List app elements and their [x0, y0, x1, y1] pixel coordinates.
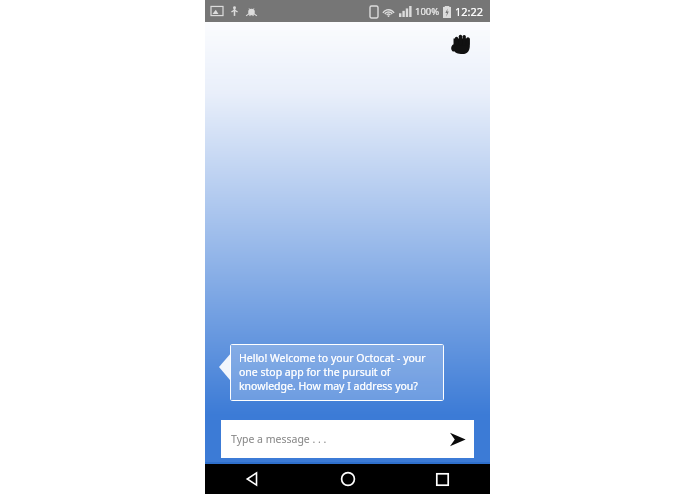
staticText: Hello! Welcome to your Octocat - your on… — [239, 351, 435, 393]
button[interactable]: Back — [205, 464, 300, 494]
button[interactable]: Home — [300, 464, 395, 494]
staticText: 100% — [415, 5, 440, 18]
button[interactable]: Send — [440, 422, 474, 456]
button[interactable]: Hello! Welcome to your Octocat - your on… — [219, 344, 444, 401]
button[interactable]: Grab — [448, 30, 474, 56]
button[interactable]: Recent apps — [395, 464, 490, 494]
staticText: Type a message . . . — [231, 432, 440, 446]
button[interactable]: Type a message . . . — [221, 420, 474, 458]
staticText: 12:22 — [455, 4, 484, 19]
